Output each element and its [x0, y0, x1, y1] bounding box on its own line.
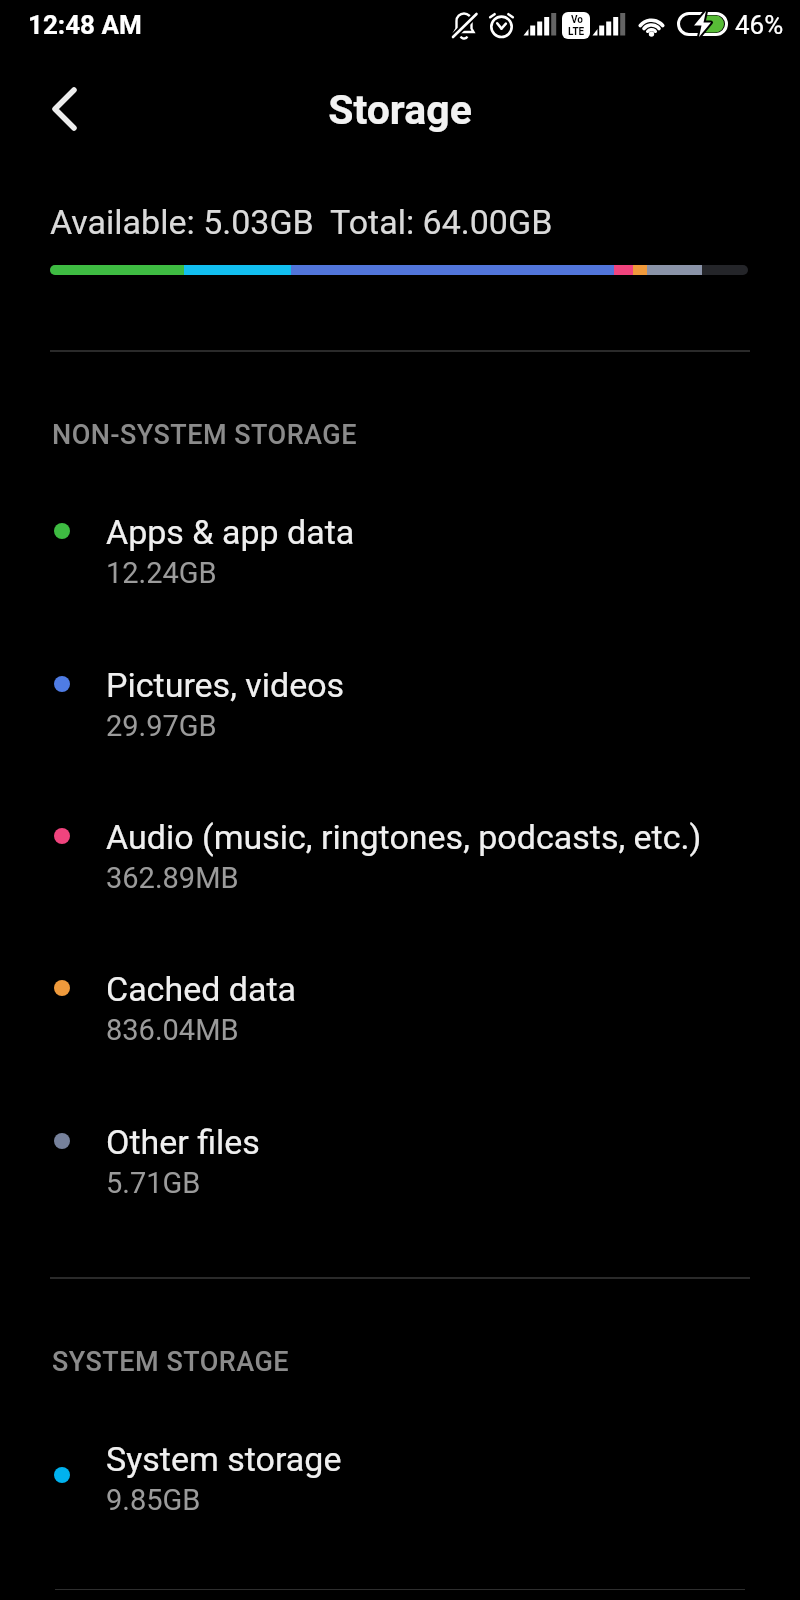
staticText: 836.04MB [106, 1013, 239, 1047]
staticText: Storage [0, 86, 800, 134]
staticText: Apps & app data [106, 512, 355, 552]
staticText: SYSTEM STORAGE [52, 1346, 290, 1378]
staticText: Pictures, videos [106, 665, 345, 705]
staticText: 46% [735, 10, 784, 40]
staticText: 12:48 AM [28, 10, 142, 40]
staticText: System storage [106, 1439, 342, 1479]
staticText: 29.97GB [106, 709, 217, 743]
button[interactable]: Audio (music, ringtones, podcasts, etc.) [0, 777, 800, 895]
button[interactable]: Cached data [0, 929, 800, 1047]
staticText: Available: 5.03GB Total: 64.00GB [50, 202, 553, 242]
staticText: 362.89MB [106, 861, 239, 895]
button[interactable] [34, 77, 98, 141]
staticText: Cached data [106, 969, 297, 1009]
staticText: NON-SYSTEM STORAGE [52, 419, 357, 451]
button[interactable]: Pictures, videos [0, 625, 800, 743]
staticText: LTE [568, 26, 585, 38]
staticText: 12.24GB [106, 556, 217, 590]
staticText: Other files [106, 1122, 260, 1162]
staticText: 5.71GB [106, 1166, 201, 1200]
button[interactable]: Other files [0, 1082, 800, 1200]
button[interactable]: System storage [0, 1399, 800, 1517]
staticText: 9.85GB [106, 1483, 201, 1517]
staticText: Audio (music, ringtones, podcasts, etc.) [106, 817, 702, 857]
button[interactable]: Apps & app data [0, 472, 800, 590]
staticText: Vo [571, 14, 583, 26]
